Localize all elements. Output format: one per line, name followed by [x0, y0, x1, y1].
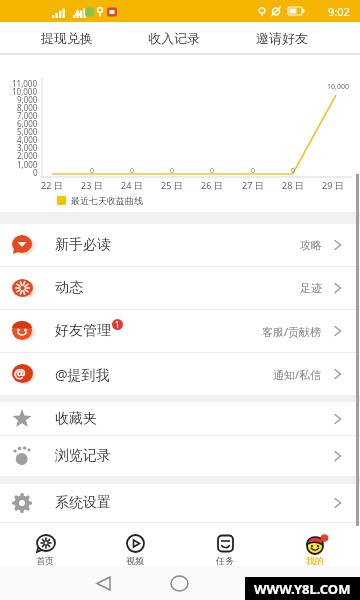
staticText: 24 日 [121, 179, 143, 191]
staticText: 首页 [36, 555, 54, 566]
staticText: 0 [170, 166, 175, 176]
staticText: 我的 [306, 555, 324, 566]
staticText: 3,000 [17, 142, 38, 153]
button[interactable]: 首页 [0, 523, 90, 566]
staticText: 最近七天收益曲线 [71, 195, 143, 206]
button[interactable]: 我的 [270, 523, 360, 566]
staticText: 27 日 [242, 179, 264, 191]
staticText: 7,000 [17, 110, 38, 121]
staticText: 视频 [126, 555, 144, 566]
staticText: 22 日 [41, 179, 63, 191]
button[interactable]: 新手必读 [0, 224, 360, 266]
staticText: 邀请好友 [256, 30, 308, 46]
staticText: 好友管理 [55, 322, 111, 340]
staticText: 8,000 [17, 102, 38, 113]
staticText: 1 [115, 319, 120, 330]
staticText: 新手必读 [55, 236, 111, 254]
staticText: WWW.Y8L.COM [254, 580, 351, 598]
staticText: 任务 [216, 555, 234, 566]
staticText: 6,000 [17, 118, 38, 129]
staticText: 9,000 [17, 94, 38, 105]
staticText: 足迹 [300, 281, 322, 295]
staticText: 28 日 [282, 179, 304, 191]
staticText: 0 [33, 167, 38, 178]
button[interactable]: 好友管理 [0, 310, 360, 352]
staticText: 0 [251, 166, 256, 176]
staticText: 0 [90, 166, 95, 176]
staticText: @ [14, 364, 26, 382]
staticText: 客服/贡献榜 [262, 324, 322, 339]
button[interactable]: 视频 [90, 523, 180, 566]
button[interactable]: @ [0, 353, 360, 395]
staticText: 浏览记录 [55, 447, 111, 465]
staticText: 11,000 [12, 78, 38, 89]
staticText: @提到我 [55, 365, 110, 384]
button[interactable]: 收藏夹 [0, 402, 360, 435]
staticText: 10,000 [327, 82, 349, 92]
button[interactable]: 系统设置 [0, 484, 360, 522]
staticText: 攻略 [300, 238, 322, 252]
staticText: 收入记录 [148, 30, 200, 46]
staticText: 0 [130, 166, 135, 176]
staticText: 23 日 [81, 179, 103, 191]
staticText: 10,000 [12, 86, 38, 97]
staticText: 5,000 [17, 126, 38, 137]
staticText: 动态 [55, 279, 83, 297]
staticText: 25 日 [161, 179, 183, 191]
staticText: 0 [210, 166, 215, 176]
staticText: 29 日 [322, 179, 344, 191]
staticText: 9:02 [328, 4, 350, 19]
staticText: 提现兑换 [41, 30, 93, 46]
staticText: 0 [291, 166, 296, 176]
button[interactable]: 浏览记录 [0, 436, 360, 476]
staticText: 26 日 [201, 179, 223, 191]
button[interactable]: 提现兑换 [13, 22, 120, 53]
button[interactable]: 动态 [0, 267, 360, 309]
staticText: 4,000 [17, 134, 38, 145]
button[interactable]: 邀请好友 [228, 22, 336, 53]
staticText: 系统设置 [55, 494, 111, 512]
staticText: 通知/私信 [273, 367, 322, 382]
button[interactable]: 任务 [180, 523, 270, 566]
button[interactable]: 收入记录 [120, 22, 228, 53]
staticText: 收藏夹 [55, 410, 97, 428]
staticText: 1,000 [17, 159, 38, 170]
staticText: 2,000 [17, 150, 38, 161]
